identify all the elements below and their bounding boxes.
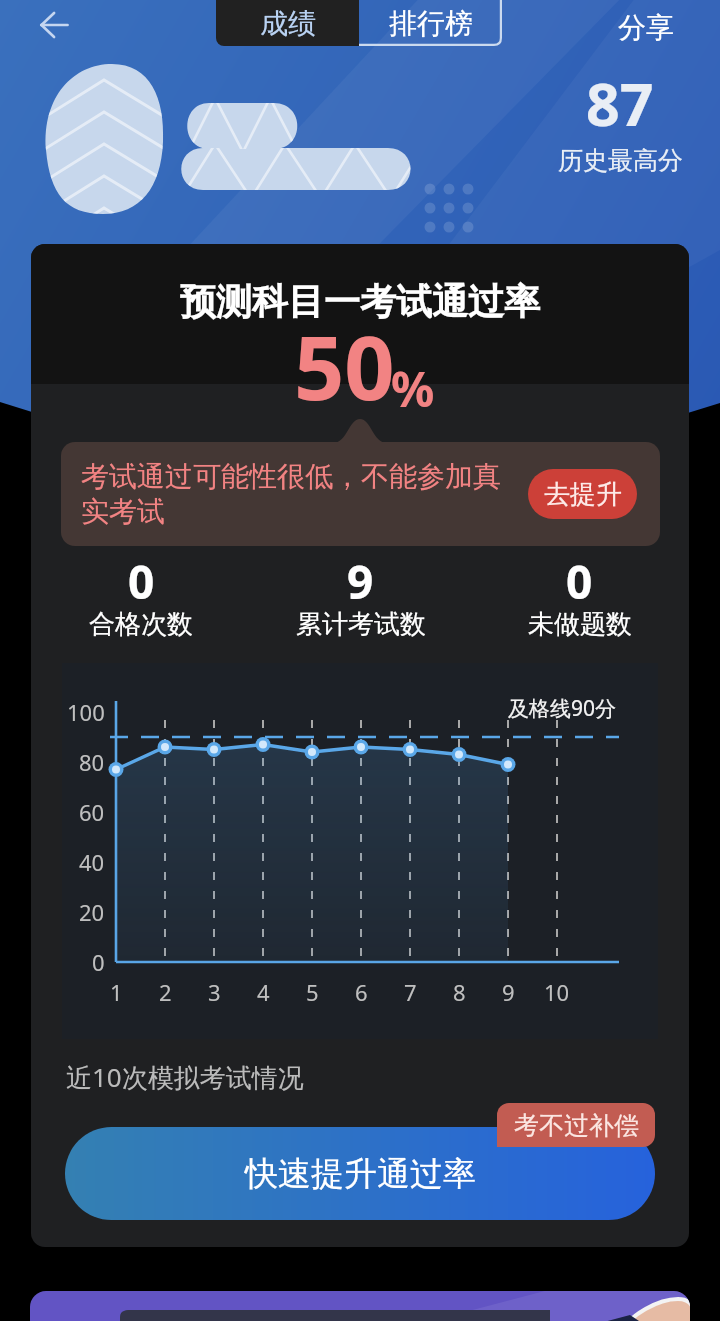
staticText: 10: [544, 977, 570, 1007]
staticText: 0: [566, 550, 593, 613]
staticText: 近10次模拟考试情况: [66, 1059, 304, 1095]
staticText: 未做题数: [528, 608, 632, 641]
button[interactable]: 考不过补偿: [497, 1103, 655, 1147]
button[interactable]: [30, 1291, 690, 1321]
button[interactable]: 成绩: [216, 0, 359, 46]
staticText: 20: [79, 897, 105, 927]
staticText: 1: [110, 977, 123, 1007]
staticText: 累计考试数: [296, 608, 426, 641]
staticText: 9: [502, 977, 515, 1007]
staticText: 及格线90分: [508, 694, 617, 723]
button[interactable]: 快速提升通过率: [65, 1127, 655, 1220]
staticText: 成绩: [260, 6, 316, 41]
staticText: 历史最高分: [558, 145, 683, 176]
staticText: 3: [208, 977, 221, 1007]
button[interactable]: Back: [30, 0, 80, 50]
staticText: 0: [128, 550, 155, 613]
staticText: 4: [257, 977, 270, 1007]
staticText: 考试通过可能性很低，不能参加真实考试: [81, 459, 520, 529]
staticText: 去提升: [544, 478, 622, 511]
staticText: 60: [79, 797, 105, 827]
staticText: 100: [67, 697, 105, 727]
staticText: 87: [586, 63, 654, 143]
staticText: 0: [92, 947, 105, 977]
staticText: 分享: [618, 10, 674, 45]
staticText: 6: [355, 977, 368, 1007]
staticText: 快速提升通过率: [245, 1153, 476, 1195]
staticText: 排行榜: [389, 6, 473, 41]
staticText: 8: [453, 977, 466, 1007]
staticText: 合格次数: [89, 608, 193, 641]
staticText: 7: [404, 977, 417, 1007]
button[interactable]: 分享: [596, 0, 696, 52]
staticText: 2: [159, 977, 172, 1007]
staticText: 考不过补偿: [514, 1110, 639, 1141]
staticText: 40: [79, 847, 105, 877]
staticText: 预测科目一考试通过率: [180, 279, 540, 324]
button[interactable]: 考试通过可能性很低，不能参加真实考试: [61, 442, 660, 546]
button[interactable]: 排行榜: [359, 0, 502, 46]
staticText: 80: [79, 747, 105, 777]
staticText: 50: [294, 306, 395, 426]
button[interactable]: 去提升: [528, 469, 637, 519]
staticText: %: [391, 356, 435, 421]
staticText: 9: [347, 550, 374, 613]
staticText: 5: [306, 977, 319, 1007]
